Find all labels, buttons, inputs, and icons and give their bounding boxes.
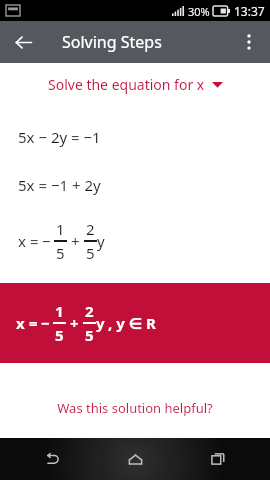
staticText: 5 <box>86 243 95 263</box>
button[interactable]: Was this solution helpful? <box>0 399 270 417</box>
button[interactable]: Back <box>4 23 42 61</box>
staticText: Was this solution helpful? <box>57 399 213 417</box>
staticText: 5 <box>55 325 64 345</box>
staticText: = <box>30 231 39 251</box>
staticText: x <box>16 313 25 333</box>
button[interactable]: Solve the equation for x <box>0 63 270 105</box>
staticText: 5 <box>85 325 94 345</box>
staticText: 1 <box>56 219 65 239</box>
button[interactable]: Recent apps <box>193 438 243 480</box>
staticText: 5 <box>56 243 65 263</box>
staticText: Solving Steps <box>62 31 162 53</box>
staticText: + <box>71 231 80 251</box>
staticText: y <box>96 313 105 333</box>
staticText: Solve the equation for x <box>48 75 205 94</box>
button[interactable]: Back <box>28 438 78 480</box>
button[interactable]: Home <box>105 438 165 480</box>
staticText: − <box>41 313 50 333</box>
staticText: 30% <box>188 4 210 19</box>
staticText: 2 <box>86 219 95 239</box>
staticText: x <box>18 231 26 251</box>
staticText: , y ∈ R <box>108 313 156 333</box>
staticText: 5x − 2y = −1 <box>18 127 101 147</box>
staticText: 1 <box>55 301 64 321</box>
staticText: 5x = −1 + 2y <box>18 175 101 195</box>
staticText: = <box>29 313 38 333</box>
staticText: + <box>70 313 79 333</box>
button[interactable]: More options <box>230 23 268 61</box>
staticText: 13:37 <box>234 3 265 19</box>
staticText: − <box>42 231 51 251</box>
staticText: y <box>97 231 105 251</box>
staticText: 2 <box>85 301 94 321</box>
